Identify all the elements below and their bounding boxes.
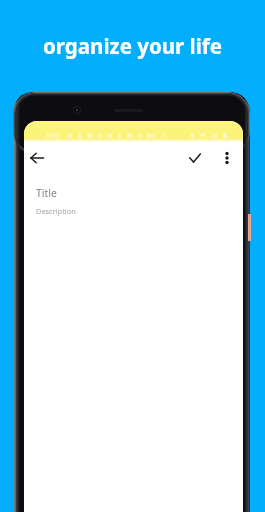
staticText: organize your life bbox=[0, 32, 265, 60]
staticText: Title bbox=[36, 186, 57, 200]
button[interactable]: Back bbox=[24, 142, 53, 174]
button[interactable]: More options bbox=[211, 142, 243, 174]
button[interactable]: Save bbox=[179, 142, 211, 174]
staticText: Description bbox=[36, 206, 76, 216]
